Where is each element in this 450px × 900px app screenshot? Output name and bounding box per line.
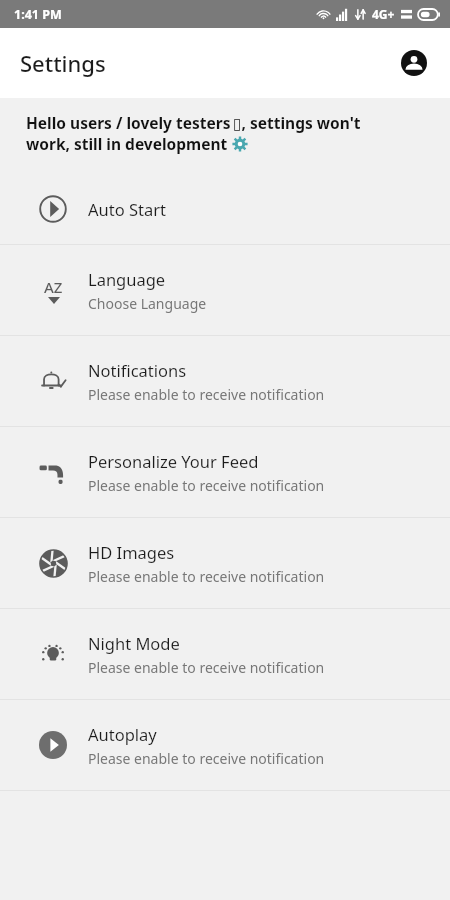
staticText: HD Images [88,541,175,563]
staticText: Auto Start [88,198,167,220]
staticText: Please enable to receive notification [88,658,325,677]
staticText: Notifications [88,359,187,381]
button[interactable]: HD Images [0,518,450,608]
button[interactable]: Autoplay [0,700,450,790]
staticText: Hello users / lovely testers ▯, settings… [26,112,361,133]
staticText: Please enable to receive notification [88,385,325,404]
staticText: Settings [20,48,106,78]
staticText: Night Mode [88,632,180,654]
staticText: Please enable to receive notification [88,476,325,495]
staticText: 4G+ [372,6,395,22]
button[interactable]: AZ [0,245,450,335]
button[interactable]: Auto Start [0,174,450,244]
staticText: Language [88,268,166,290]
staticText: AZ [44,277,63,297]
staticText: 1:41 PM [14,6,62,23]
staticText: work, still in development [26,133,232,154]
button[interactable]: Night Mode [0,609,450,699]
staticText: Please enable to receive notification [88,749,325,768]
button[interactable]: Notifications [0,336,450,426]
staticText: Choose Language [88,294,207,313]
button[interactable]: Personalize Your Feed [0,427,450,517]
staticText: Autoplay [88,723,157,745]
staticText: Personalize Your Feed [88,450,259,472]
button[interactable]: Account [392,41,436,85]
staticText: Please enable to receive notification [88,567,325,586]
